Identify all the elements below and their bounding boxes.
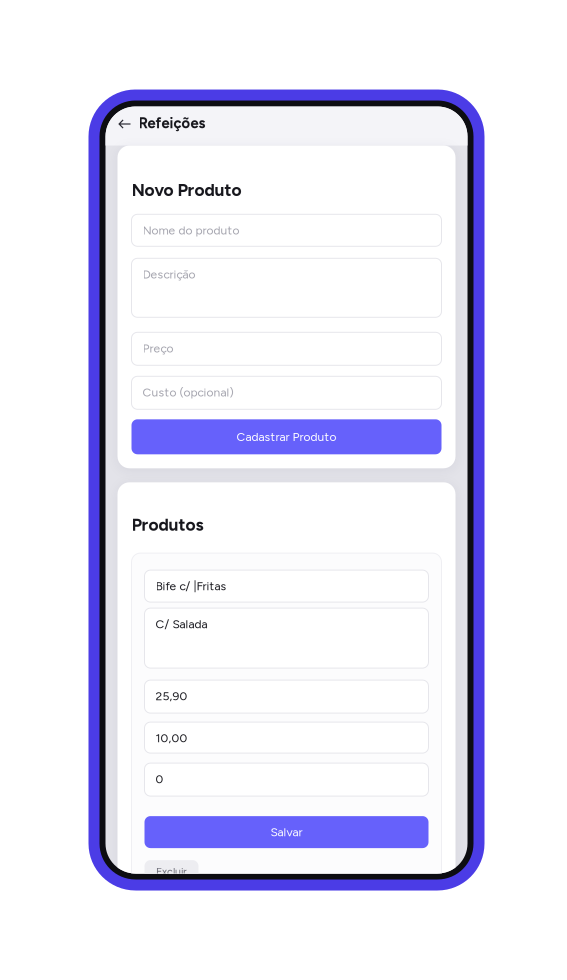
- button[interactable]: Excluir: [144, 860, 198, 884]
- staticText: Bife c/ |Fritas: [155, 579, 226, 593]
- button[interactable]: Refeições: [105, 106, 467, 145]
- staticText: Cadastrar Produto: [236, 430, 336, 444]
- staticText: Produtos: [131, 514, 203, 535]
- staticText: Refeições: [138, 114, 205, 132]
- button[interactable]: Salvar: [144, 816, 428, 848]
- staticText: Nome do produto: [142, 223, 239, 237]
- staticText: Descrição: [142, 267, 195, 281]
- staticText: Custo (opcional): [142, 385, 233, 399]
- staticText: Novo Produto: [131, 179, 241, 200]
- staticText: Preço: [142, 341, 173, 355]
- staticText: 10,00: [155, 731, 187, 745]
- staticText: Salvar: [270, 825, 302, 839]
- staticText: C/ Salada: [155, 617, 207, 631]
- staticText: 25,90: [155, 689, 187, 703]
- staticText: Excluir: [156, 866, 187, 878]
- button[interactable]: Cadastrar Produto: [131, 419, 441, 454]
- staticText: 0: [155, 772, 163, 786]
